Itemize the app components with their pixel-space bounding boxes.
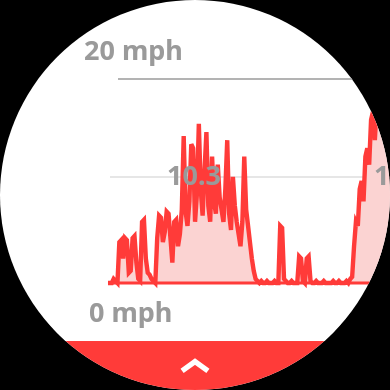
button[interactable]: Expand details: [0, 341, 390, 390]
